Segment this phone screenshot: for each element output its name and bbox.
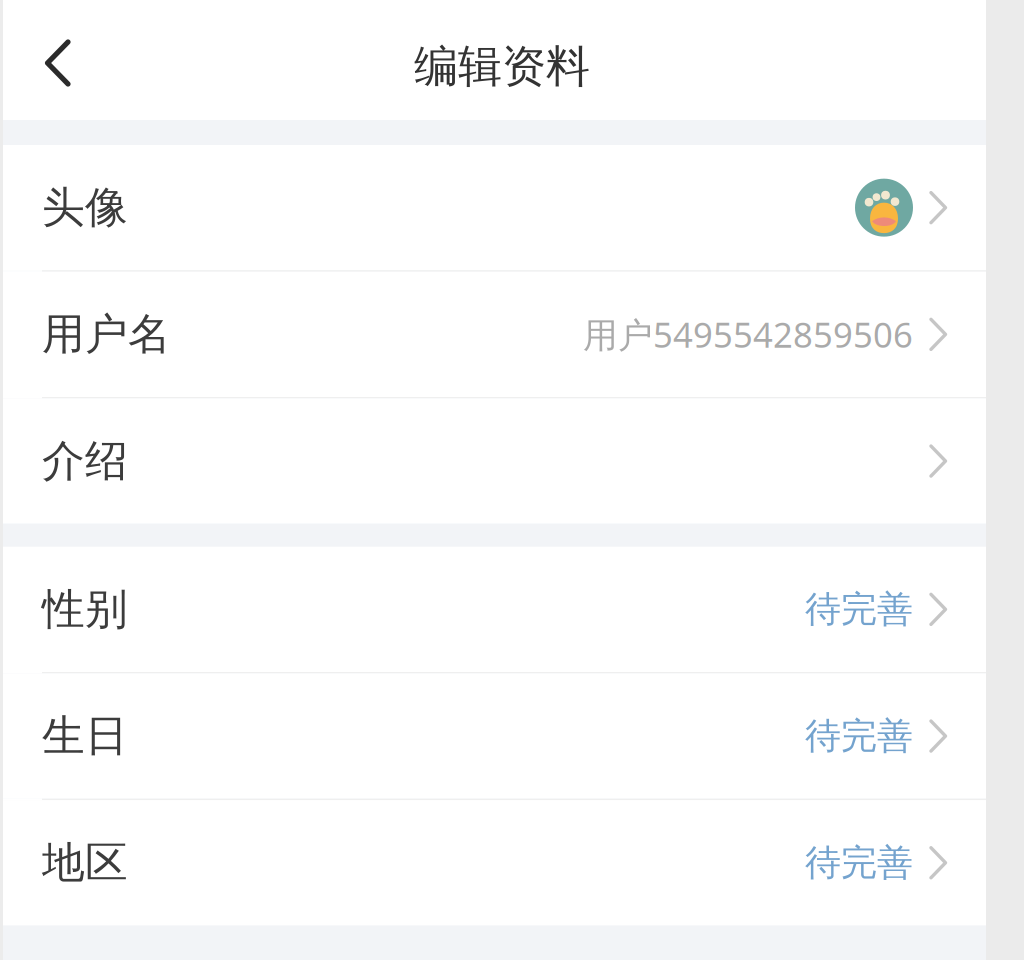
staticText: 头像 <box>42 181 128 234</box>
staticText: 编辑资料 <box>414 39 590 93</box>
button[interactable]: Back <box>3 0 95 120</box>
staticText: 待完善 <box>805 841 913 885</box>
staticText: 性别 <box>42 583 128 635</box>
staticText: 介绍 <box>42 435 128 487</box>
button[interactable]: 介绍 <box>3 398 986 524</box>
staticText: 待完善 <box>805 587 913 631</box>
staticText: 生日 <box>42 710 128 762</box>
button[interactable]: 用户名 <box>3 272 986 397</box>
staticText: 地区 <box>42 836 128 889</box>
button[interactable]: 头像 <box>3 145 986 270</box>
button[interactable]: 生日 <box>3 673 986 799</box>
staticText: 用户名 <box>42 308 171 360</box>
button[interactable]: 地区 <box>3 800 986 925</box>
button[interactable]: 性别 <box>3 547 986 672</box>
staticText: 待完善 <box>805 714 913 758</box>
staticText: 用户5495542859506 <box>583 311 913 357</box>
